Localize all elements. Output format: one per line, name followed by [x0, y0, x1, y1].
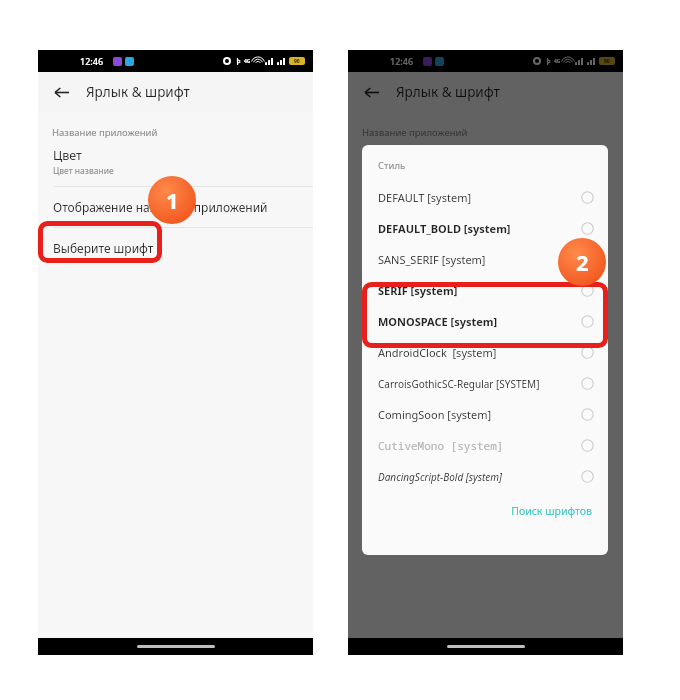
- staticText: CutiveMono [system]: [378, 438, 581, 453]
- button[interactable]: ComingSoon [system]: [362, 399, 608, 430]
- button[interactable]: CutiveMono [system]: [362, 430, 608, 461]
- staticText: DEFAULT_BOLD [system]: [378, 221, 581, 236]
- button[interactable]: Выберите шрифт: [38, 228, 313, 268]
- staticText: 2: [576, 247, 589, 277]
- staticText: 12:46: [390, 55, 414, 67]
- button[interactable]: CarroisGothicSC-Regular [SYSTEM]: [362, 368, 608, 399]
- staticText: Поиск шрифтов: [511, 504, 592, 518]
- staticText: 1: [166, 185, 179, 215]
- staticText: Цвет название: [53, 165, 114, 177]
- button[interactable]: Отображение названия приложений: [38, 187, 313, 227]
- staticText: Название приложений: [362, 126, 468, 139]
- staticText: AndroidClock [system]: [378, 345, 581, 360]
- button[interactable]: Back: [356, 77, 386, 107]
- button[interactable]: AndroidClock [system]: [362, 337, 608, 368]
- staticText: 4G: [244, 58, 251, 65]
- button[interactable]: DEFAULT_BOLD [system]: [362, 213, 608, 244]
- staticText: 4G: [554, 58, 561, 65]
- staticText: MONOSPACE [system]: [378, 314, 581, 329]
- staticText: Цвет: [53, 147, 82, 164]
- staticText: Отображение названия приложений: [53, 199, 268, 215]
- staticText: Выберите шрифт: [53, 240, 154, 256]
- staticText: ComingSoon [system]: [378, 407, 581, 422]
- button[interactable]: Цвет: [38, 147, 313, 186]
- button[interactable]: DancingScript-Bold [system]: [362, 461, 608, 492]
- staticText: 12:46: [80, 55, 104, 67]
- button[interactable]: DEFAULT [system]: [362, 182, 608, 213]
- button[interactable]: SERIF [system]: [362, 275, 608, 306]
- button[interactable]: MONOSPACE [system]: [362, 306, 608, 337]
- button[interactable]: Back: [46, 77, 76, 107]
- staticText: SERIF [system]: [378, 283, 581, 298]
- staticText: SANS_SERIF [system]: [378, 252, 581, 267]
- staticText: Ярлык & шрифт: [86, 83, 190, 101]
- button[interactable]: Поиск шрифтов: [495, 500, 608, 522]
- staticText: CarroisGothicSC-Regular [SYSTEM]: [378, 377, 581, 391]
- staticText: Ярлык & шрифт: [396, 83, 500, 101]
- staticText: DEFAULT [system]: [378, 190, 581, 205]
- button[interactable]: SANS_SERIF [system]: [362, 244, 608, 275]
- staticText: 90: [604, 58, 610, 65]
- staticText: 90: [294, 58, 300, 65]
- staticText: Название приложений: [52, 126, 158, 139]
- staticText: DancingScript-Bold [system]: [378, 470, 581, 484]
- staticText: Стиль: [378, 159, 406, 172]
